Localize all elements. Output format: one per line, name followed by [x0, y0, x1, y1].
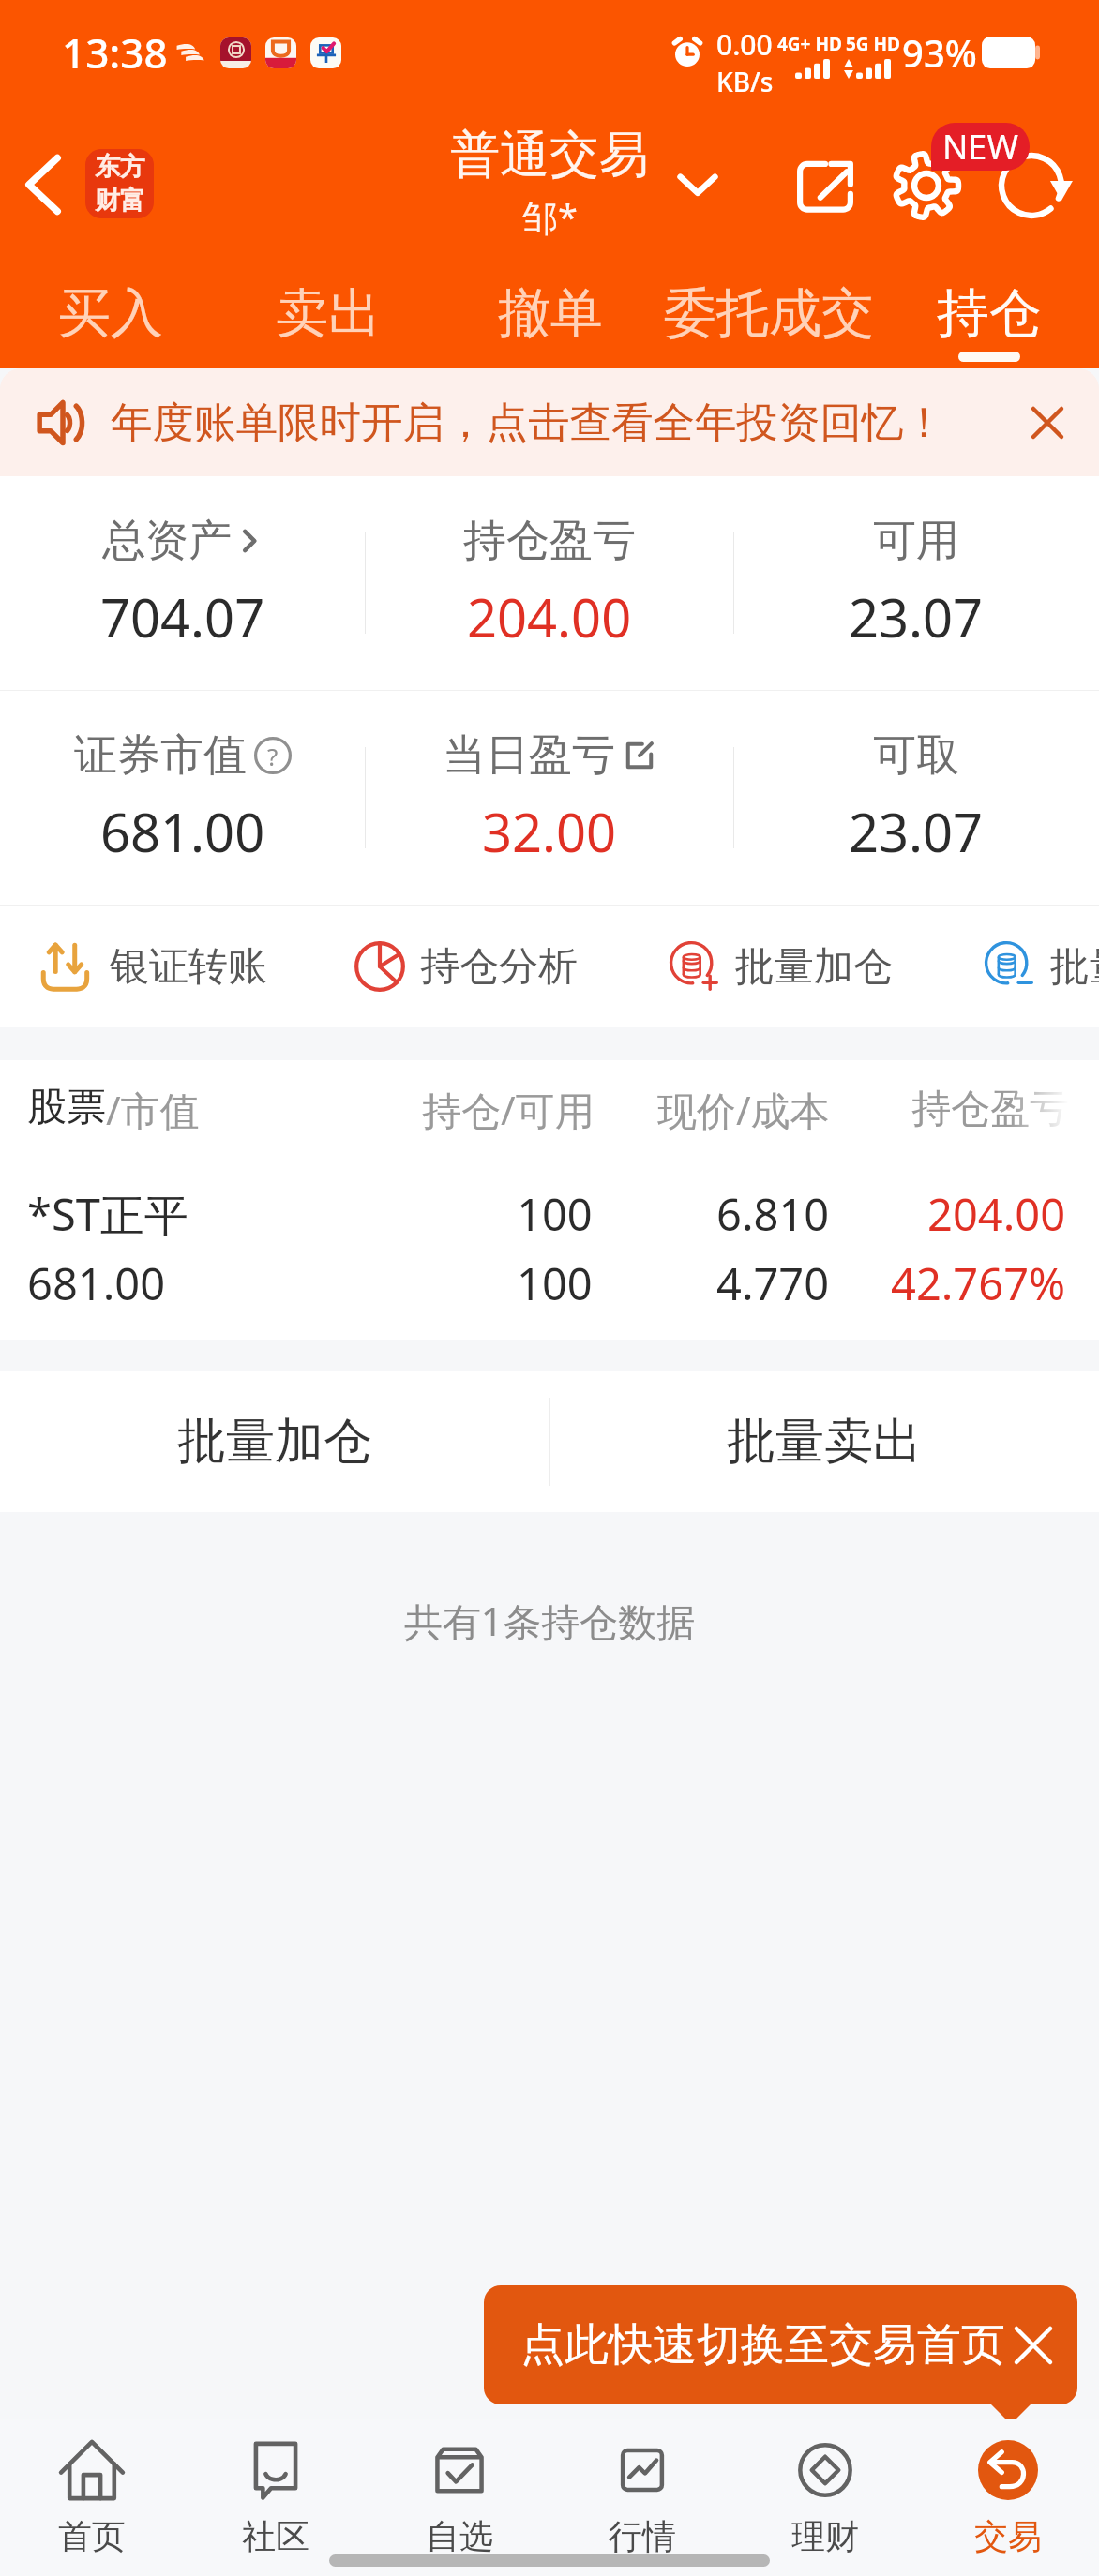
button[interactable]: Share: [784, 144, 866, 227]
button[interactable]: Back: [0, 143, 86, 226]
button[interactable]: 可用: [732, 476, 1099, 690]
staticText: 4.770: [716, 1253, 830, 1313]
staticText: 邹*: [522, 192, 578, 241]
staticText: 社区: [242, 2515, 309, 2557]
staticText: 持仓盈亏: [911, 1085, 1069, 1134]
staticText: 财富: [95, 185, 145, 217]
button[interactable]: Close banner: [1015, 390, 1080, 456]
staticText: 批量: [1050, 942, 1099, 992]
staticText: 13:38: [62, 24, 168, 81]
button[interactable]: 自选: [368, 2419, 550, 2576]
staticText: 42.767%: [891, 1253, 1066, 1313]
button[interactable]: 批量加仓: [0, 1371, 549, 1512]
staticText: 普通交易: [450, 124, 649, 187]
staticText: 5G HD: [846, 32, 901, 56]
button[interactable]: 委托成交: [660, 262, 878, 368]
button[interactable]: 批量加仓: [662, 915, 906, 1018]
button[interactable]: 东方: [85, 149, 154, 218]
staticText: 行情: [609, 2515, 676, 2557]
staticText: 批量加仓: [735, 942, 893, 992]
staticText: 持仓/可用: [422, 1083, 593, 1136]
button[interactable]: 理财: [733, 2419, 916, 2576]
button[interactable]: 批量: [977, 915, 1099, 1018]
staticText: 银证转账: [110, 942, 267, 992]
button[interactable]: 证券市值: [0, 691, 366, 905]
button[interactable]: 持仓: [926, 262, 1053, 368]
staticText: 持仓盈亏: [463, 514, 636, 568]
button[interactable]: 卖出: [264, 262, 392, 368]
staticText: *ST正平: [27, 1184, 188, 1244]
button[interactable]: 买入: [47, 262, 174, 368]
staticText: 6.810: [716, 1184, 830, 1244]
button[interactable]: Refresh: [990, 144, 1073, 227]
button[interactable]: 批量卖出: [549, 1371, 1099, 1512]
staticText: 681.00: [27, 1253, 166, 1313]
staticText: /市值: [106, 1083, 200, 1136]
staticText: 100: [517, 1184, 593, 1244]
staticText: 持仓: [937, 280, 1042, 347]
button[interactable]: 总资产: [0, 476, 366, 690]
button[interactable]: Settings: [885, 144, 968, 227]
staticText: 批量加仓: [177, 1411, 372, 1473]
staticText: 204.00: [467, 581, 632, 652]
staticText: 总资产: [102, 514, 232, 568]
staticText: 704.07: [100, 581, 265, 652]
staticText: 自选: [426, 2515, 493, 2557]
button[interactable]: 年度账单限时开启，点击查看全年投资回忆！: [0, 368, 1099, 476]
staticText: 首页: [58, 2515, 126, 2557]
button[interactable]: 行情: [550, 2419, 733, 2576]
staticText: 93%: [902, 27, 977, 78]
staticText: 点此快速切换至交易首页: [520, 2317, 1005, 2373]
staticText: 100: [517, 1253, 593, 1313]
button[interactable]: 首页: [0, 2419, 184, 2576]
button[interactable]: 银证转账: [33, 915, 280, 1018]
button[interactable]: *ST正平: [0, 1158, 1099, 1340]
staticText: ?: [267, 740, 279, 772]
staticText: 买入: [58, 280, 163, 347]
button[interactable]: 可取: [732, 691, 1099, 905]
staticText: 可用: [873, 514, 959, 568]
button[interactable]: 持仓盈亏: [366, 476, 732, 690]
staticText: 撤单: [498, 280, 603, 347]
staticText: 23.07: [849, 796, 984, 867]
staticText: 理财: [791, 2515, 859, 2557]
staticText: 0.00: [716, 25, 773, 64]
staticText: 委托成交: [664, 280, 874, 347]
staticText: 681.00: [100, 796, 265, 867]
staticText: 现价/成本: [657, 1083, 830, 1136]
button[interactable]: 交易: [916, 2419, 1099, 2576]
staticText: 年度账单限时开启，点击查看全年投资回忆！: [111, 397, 945, 449]
staticText: 卖出: [276, 280, 381, 347]
staticText: 批量卖出: [727, 1411, 922, 1473]
button[interactable]: 社区: [184, 2419, 368, 2576]
staticText: 东方: [95, 151, 145, 183]
button[interactable]: 持仓分析: [347, 915, 591, 1018]
staticText: NEW: [942, 124, 1018, 170]
button[interactable]: 当日盈亏: [366, 691, 732, 905]
staticText: KB/s: [716, 64, 774, 99]
staticText: 持仓分析: [420, 942, 578, 992]
staticText: 32.00: [482, 796, 617, 867]
staticText: 交易: [974, 2515, 1042, 2557]
staticText: 当日盈亏: [443, 728, 615, 783]
staticText: 证券市值: [74, 728, 247, 783]
staticText: 共有1条持仓数据: [0, 1595, 1099, 1647]
staticText: 股票: [27, 1083, 106, 1132]
staticText: 4G+ HD: [777, 32, 842, 56]
staticText: 可取: [873, 728, 959, 783]
button[interactable]: 点此快速切换至交易首页: [484, 2285, 1077, 2404]
button[interactable]: 普通交易: [362, 124, 737, 241]
button[interactable]: 撤单: [487, 262, 614, 368]
staticText: 23.07: [849, 581, 984, 652]
staticText: 204.00: [927, 1184, 1066, 1244]
